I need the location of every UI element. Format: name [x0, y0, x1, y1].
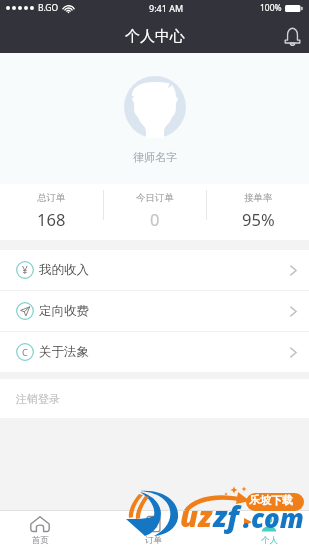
staticText: 订单	[145, 535, 162, 546]
button[interactable]: ¥	[0, 250, 309, 290]
staticText: 168	[37, 208, 66, 226]
staticText: 首页	[32, 535, 49, 546]
staticText: 今日订单	[136, 192, 174, 204]
staticText: 个人中心	[125, 27, 185, 46]
staticText: uz	[180, 496, 213, 535]
staticText: 注销登录	[16, 392, 60, 406]
staticText: 总订单	[37, 192, 66, 204]
button[interactable]: 首页	[0, 511, 80, 550]
staticText: zf	[213, 496, 239, 535]
staticText: 95%	[242, 208, 275, 226]
staticText: 律师名字	[133, 150, 177, 164]
staticText: 乐坡下载	[249, 493, 293, 507]
staticText: ¥	[22, 263, 28, 277]
staticText: 接单率	[244, 192, 273, 204]
button[interactable]: C	[0, 332, 309, 372]
button[interactable]: 订单	[113, 511, 193, 550]
staticText: 0	[150, 208, 160, 226]
staticText: 定向收费	[39, 303, 89, 319]
button[interactable]: Notifications	[276, 20, 309, 53]
staticText: 100%	[260, 2, 282, 14]
staticText: 我的收入	[39, 262, 89, 278]
button[interactable]: 定向收费	[0, 291, 309, 331]
staticText: B.GO	[38, 2, 59, 14]
staticText: C	[22, 346, 28, 358]
staticText: 9:41 AM	[149, 2, 184, 14]
button[interactable]: 个人	[229, 511, 309, 550]
staticText: 关于法象	[39, 344, 89, 360]
button[interactable]: 注销登录	[0, 379, 309, 418]
staticText: .com	[243, 500, 304, 535]
staticText: 个人	[261, 535, 278, 546]
